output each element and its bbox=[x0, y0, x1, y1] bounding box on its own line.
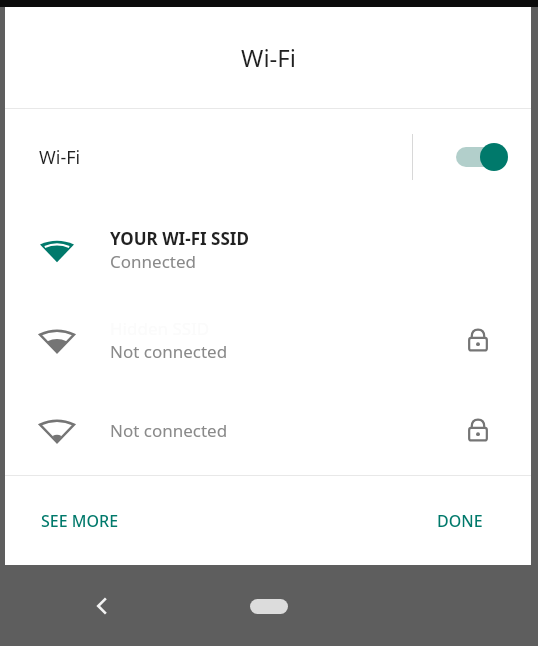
staticText: Not connected bbox=[110, 340, 228, 363]
button[interactable]: YOUR WI-FI SSID bbox=[5, 205, 531, 295]
staticText: YOUR WI-FI SSID bbox=[110, 227, 249, 250]
button[interactable]: DONE bbox=[423, 500, 497, 542]
button[interactable]: Not connected bbox=[5, 385, 531, 475]
button[interactable]: Home bbox=[233, 589, 305, 623]
staticText: Connected bbox=[110, 250, 196, 273]
button[interactable]: Wi-Fi bbox=[5, 109, 531, 205]
staticText: Not connected bbox=[110, 419, 228, 442]
button[interactable]: Back bbox=[79, 582, 127, 630]
staticText: Wi-Fi bbox=[39, 145, 81, 170]
button[interactable]: Hidden SSID bbox=[5, 295, 531, 385]
staticText: Wi-Fi bbox=[241, 41, 296, 74]
button[interactable]: SEE MORE bbox=[27, 500, 133, 542]
button[interactable]: Wi-Fi toggle, on bbox=[448, 133, 518, 181]
staticText: SEE MORE bbox=[41, 510, 119, 532]
staticText: DONE bbox=[437, 510, 483, 532]
